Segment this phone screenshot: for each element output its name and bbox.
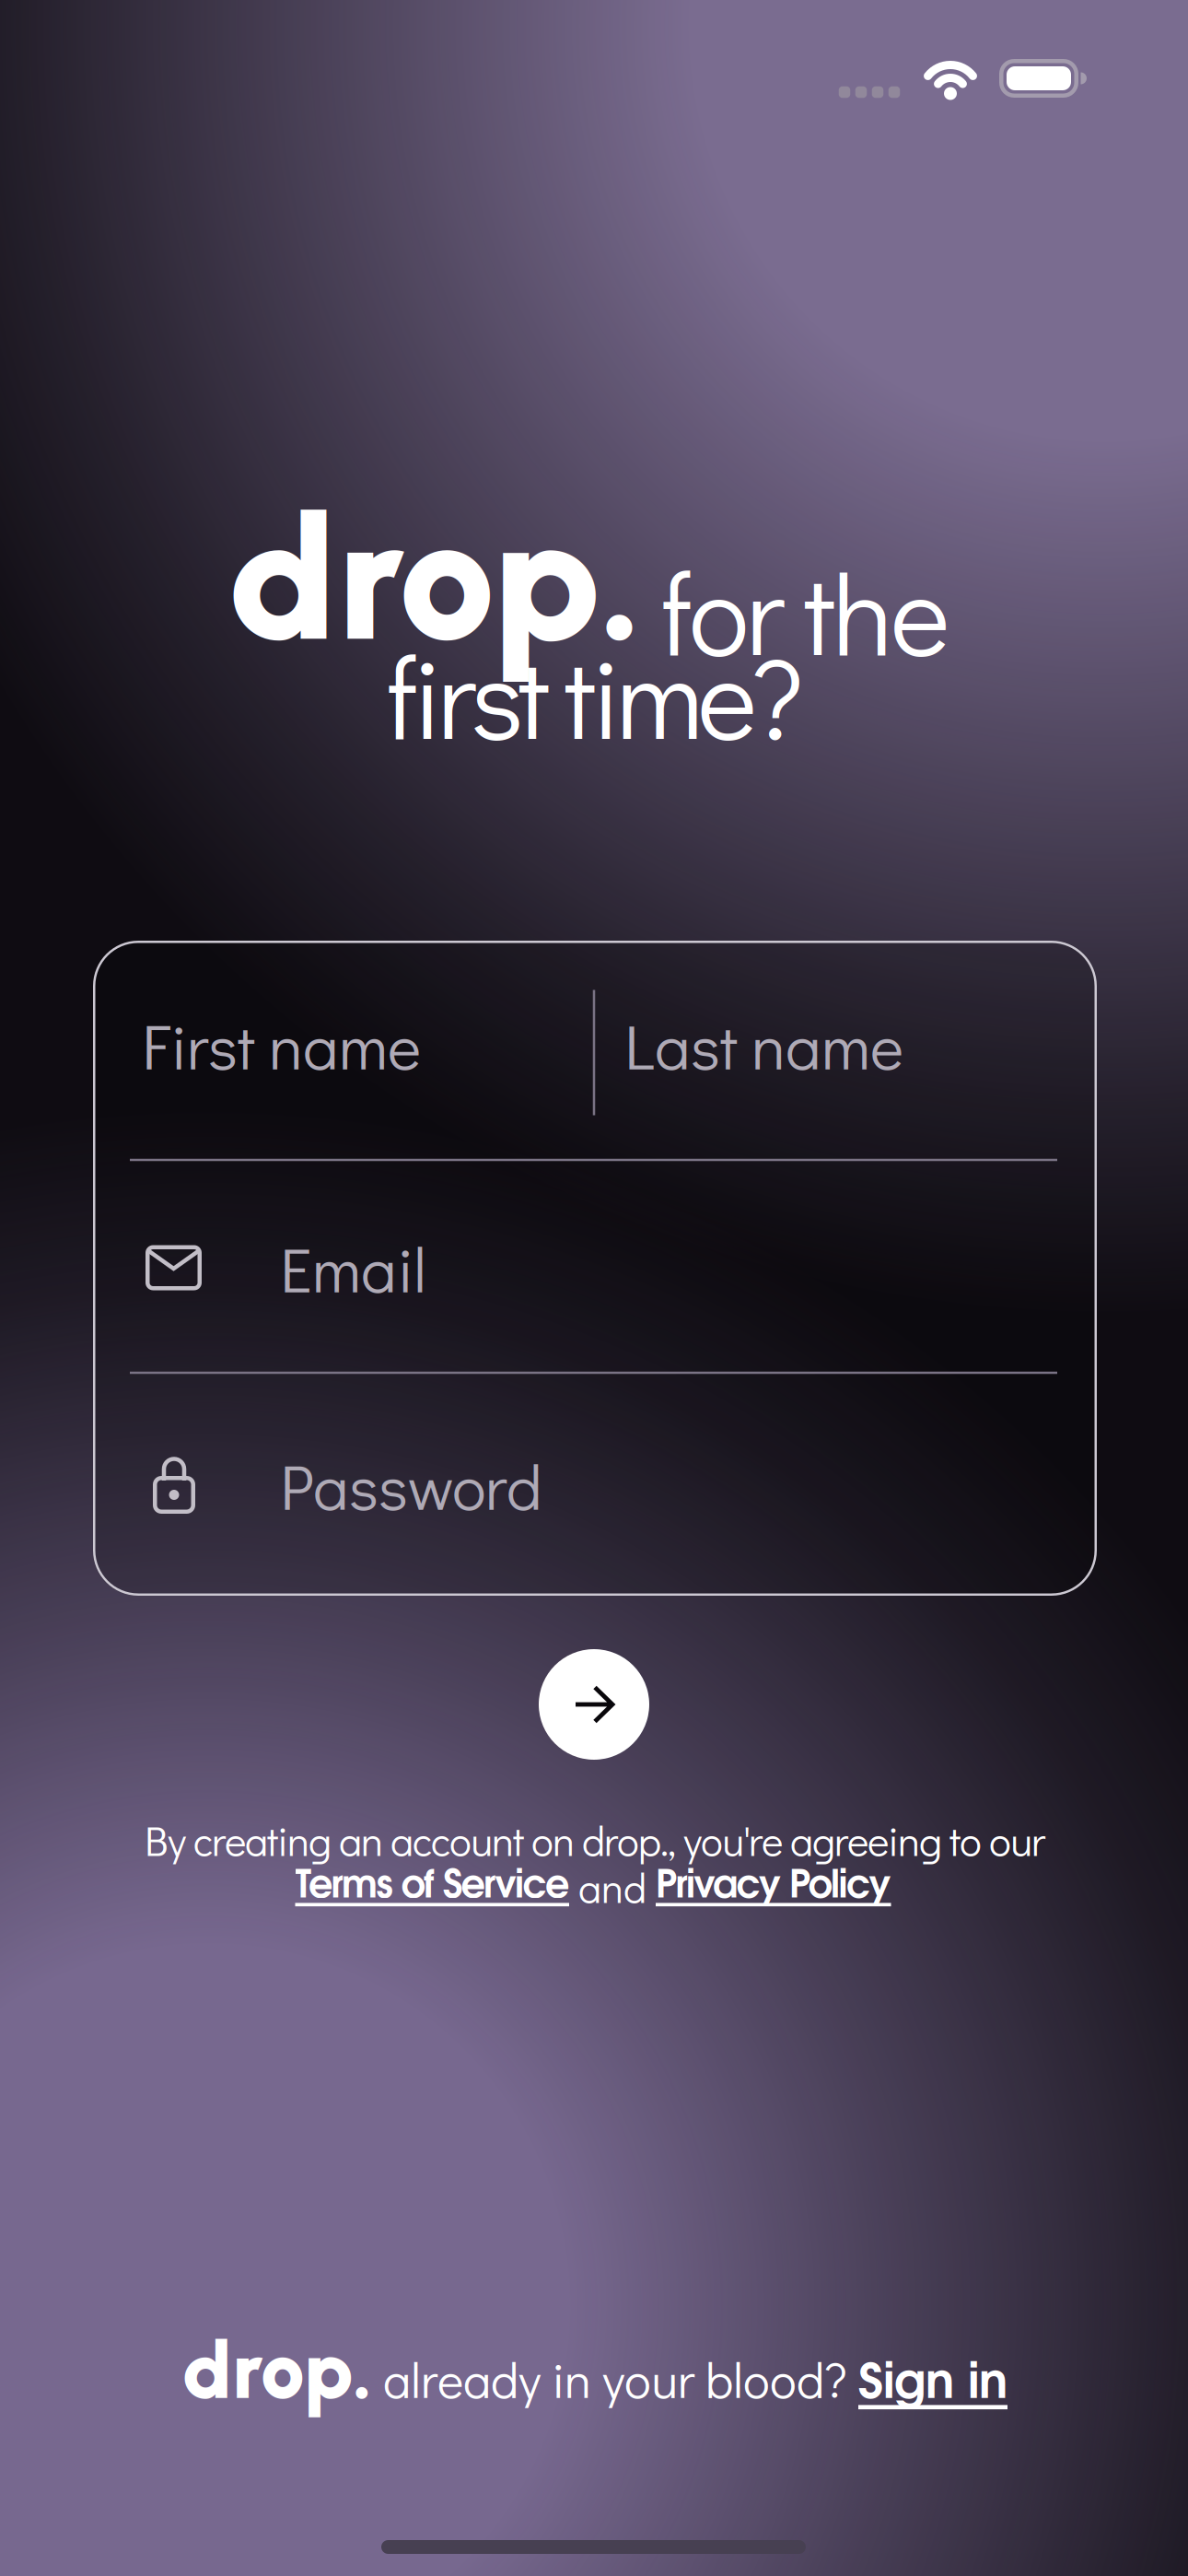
staticText: and: [569, 1860, 656, 1914]
button[interactable]: Sign in: [858, 2363, 1007, 2407]
button[interactable]: Password: [94, 1376, 1096, 1595]
staticText: Terms of Service: [295, 1869, 569, 1904]
button[interactable]: First name: [94, 937, 591, 1152]
staticText: Sign in: [858, 2363, 1007, 2407]
button[interactable]: Continue: [539, 1649, 649, 1760]
staticText: drop.: [182, 2323, 372, 2418]
button[interactable]: Email: [94, 1162, 1096, 1374]
button[interactable]: Last name: [595, 937, 1096, 1152]
staticText: Password: [280, 1444, 542, 1527]
staticText: First name: [142, 1003, 421, 1086]
staticText: drop.: [228, 475, 643, 682]
button[interactable]: Privacy Policy: [656, 1869, 891, 1904]
button[interactable]: Terms of Service: [295, 1869, 569, 1904]
staticText: for the: [660, 537, 949, 685]
staticText: Privacy Policy: [656, 1869, 891, 1904]
staticText: Email: [280, 1226, 426, 1309]
staticText: Last name: [624, 1003, 903, 1086]
staticText: By creating an account on drop., you're …: [145, 1813, 1045, 1867]
staticText: first time?: [386, 621, 804, 769]
staticText: already in your blood?: [372, 2346, 858, 2411]
